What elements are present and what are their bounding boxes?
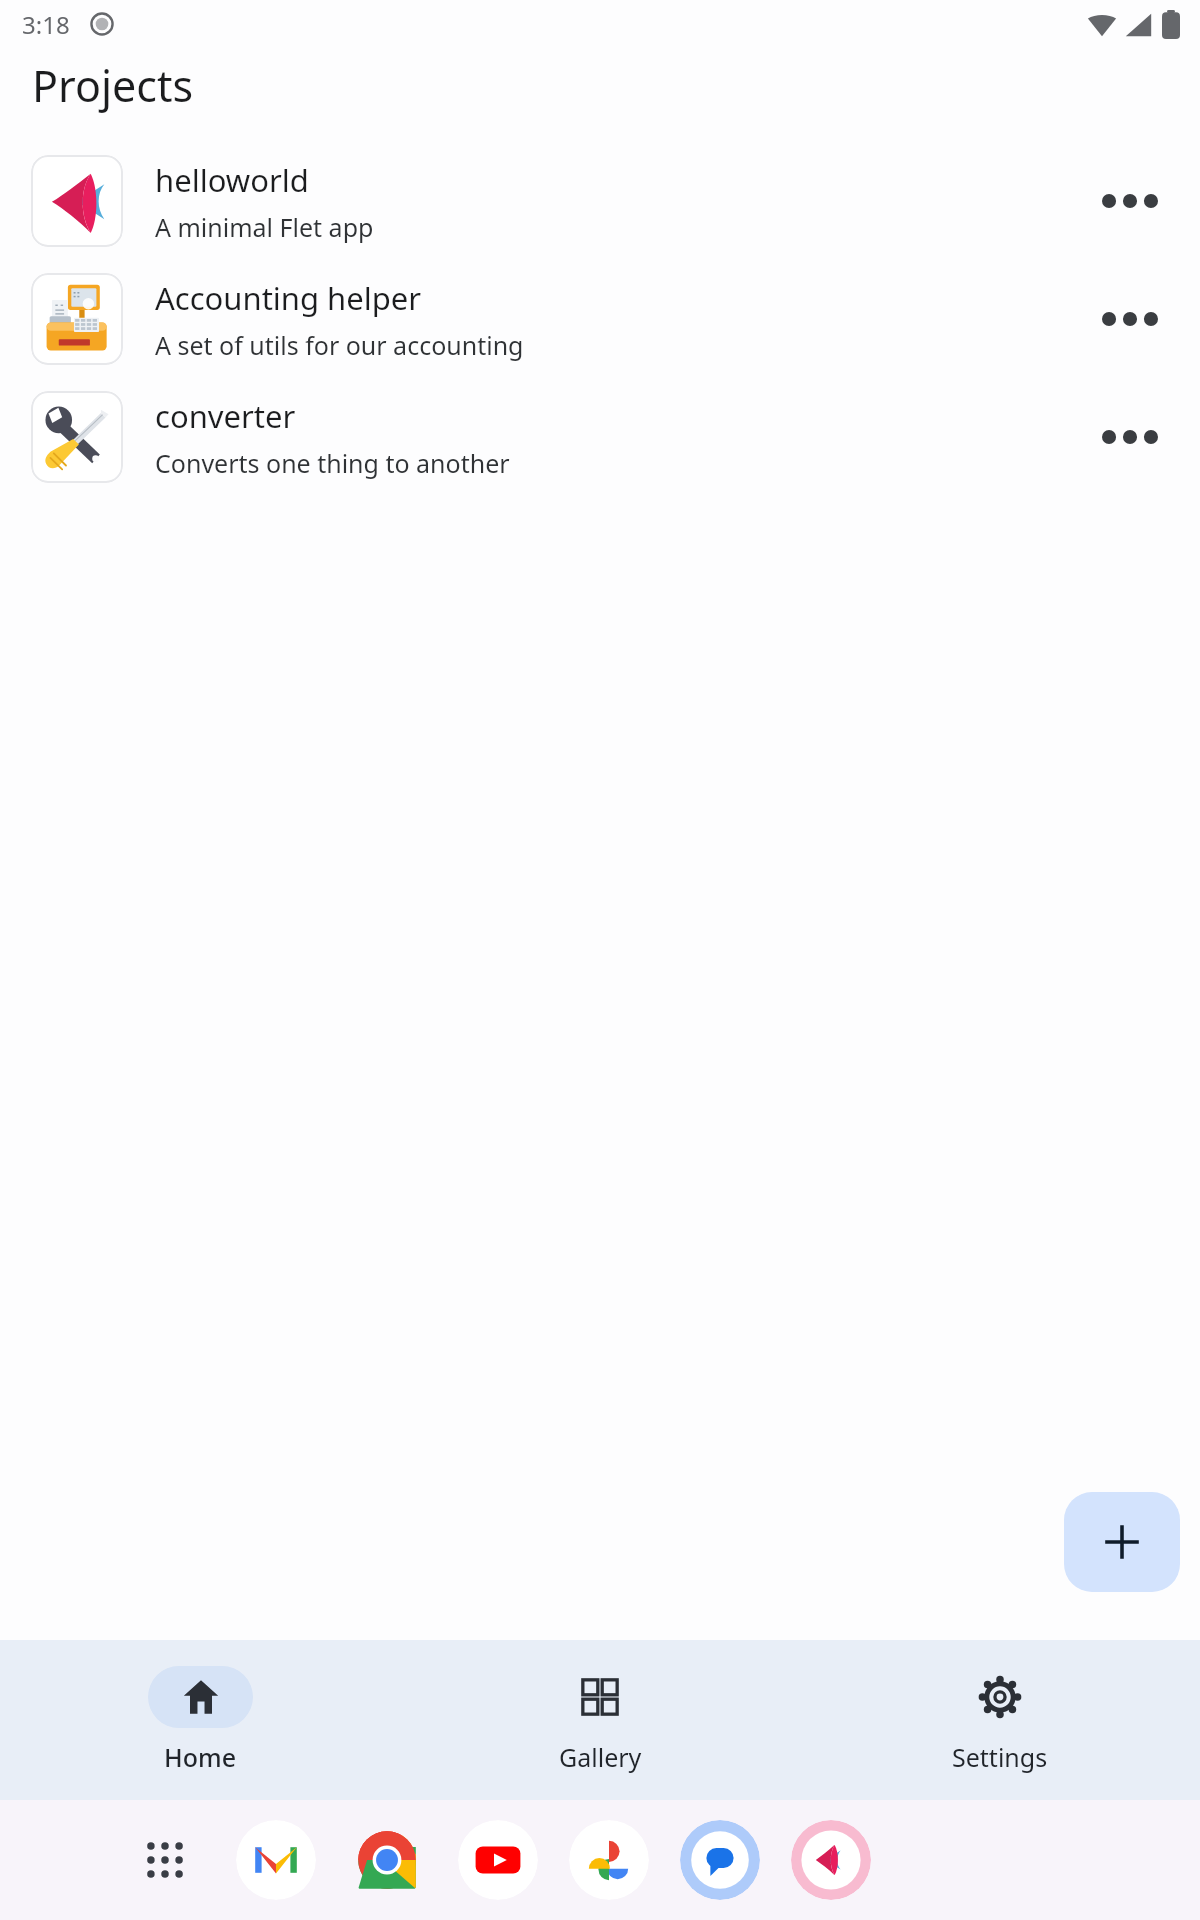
button[interactable]: Add project <box>1064 1492 1180 1592</box>
button[interactable]: helloworld <box>0 142 1200 260</box>
staticText: Converts one thing to another <box>155 446 510 480</box>
button[interactable]: converter <box>0 378 1200 496</box>
button[interactable]: Photos <box>569 1820 649 1900</box>
button[interactable]: Settings <box>800 1640 1200 1800</box>
staticText: converter <box>155 395 296 437</box>
button[interactable]: YouTube <box>458 1820 538 1900</box>
button[interactable]: More options for converter <box>1080 387 1180 487</box>
button[interactable]: Messages <box>680 1820 760 1900</box>
button[interactable]: Gmail <box>236 1820 316 1900</box>
button[interactable]: Flet app <box>791 1820 871 1900</box>
staticText: A minimal Flet app <box>155 210 374 244</box>
staticText: 3:18 <box>22 8 70 41</box>
staticText: Gallery <box>559 1740 642 1774</box>
button[interactable]: Home <box>0 1640 400 1800</box>
button[interactable]: Accounting helper <box>0 260 1200 378</box>
staticText: A set of utils for our accounting <box>155 328 524 362</box>
staticText: Settings <box>952 1740 1048 1774</box>
button[interactable]: All apps <box>125 1820 205 1900</box>
button[interactable]: Gallery <box>400 1640 800 1800</box>
staticText: Home <box>164 1740 237 1774</box>
staticText: Projects <box>32 56 194 115</box>
staticText: Accounting helper <box>155 277 422 319</box>
button[interactable]: More options for helloworld <box>1080 151 1180 251</box>
button[interactable]: Chrome <box>347 1820 427 1900</box>
staticText: helloworld <box>155 159 309 201</box>
button[interactable]: More options for Accounting helper <box>1080 269 1180 369</box>
